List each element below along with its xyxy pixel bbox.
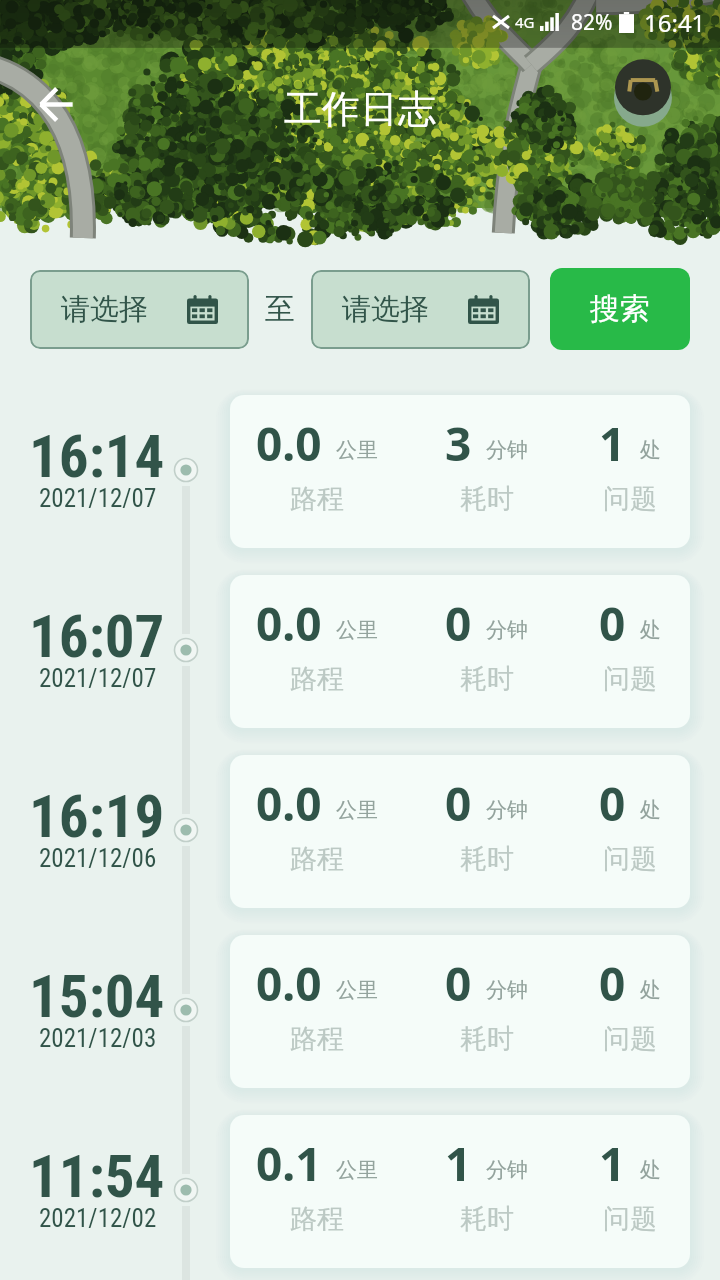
staticText: 路程: [290, 1022, 344, 1056]
staticText: 工作日志: [284, 85, 436, 133]
staticText: 处: [640, 437, 661, 463]
button[interactable]: 请选择: [30, 270, 249, 349]
staticText: 2021/12/03: [39, 1024, 157, 1053]
staticText: 问题: [603, 1202, 657, 1236]
staticText: 2021/12/07: [39, 484, 157, 513]
staticText: 分钟: [486, 977, 528, 1003]
staticText: 处: [640, 617, 661, 643]
staticText: 耗时: [460, 1022, 514, 1056]
staticText: 分钟: [486, 437, 528, 463]
staticText: 11:54: [29, 1142, 165, 1211]
staticText: 82%: [571, 8, 613, 37]
button[interactable]: 搜索: [550, 268, 690, 350]
staticText: 0.1: [256, 1132, 322, 1195]
staticText: 处: [640, 1157, 661, 1183]
button[interactable]: 15:04: [0, 935, 720, 1115]
staticText: 0: [445, 952, 472, 1015]
button[interactable]: 11:54: [0, 1115, 720, 1280]
staticText: 2021/12/06: [39, 844, 157, 873]
staticText: 0.0: [256, 412, 322, 475]
staticText: 耗时: [460, 1202, 514, 1236]
staticText: 0.0: [256, 772, 322, 835]
staticText: 15:04: [29, 962, 165, 1031]
staticText: 耗时: [460, 482, 514, 516]
staticText: 0: [599, 772, 626, 835]
staticText: 0.0: [256, 952, 322, 1015]
staticText: 请选择: [61, 291, 148, 328]
staticText: 2021/12/02: [39, 1204, 157, 1233]
staticText: 公里: [336, 617, 378, 643]
staticText: 1: [599, 1132, 626, 1195]
staticText: 请选择: [342, 291, 429, 328]
staticText: 至: [265, 290, 295, 328]
staticText: 0: [599, 952, 626, 1015]
staticText: 路程: [290, 482, 344, 516]
staticText: 问题: [603, 662, 657, 696]
staticText: 0: [599, 592, 626, 655]
staticText: 搜索: [590, 290, 650, 328]
staticText: 1: [445, 1132, 472, 1195]
staticText: 16:14: [29, 422, 165, 491]
staticText: 3: [445, 412, 472, 475]
button[interactable]: 请选择: [311, 270, 530, 349]
staticText: 0: [445, 772, 472, 835]
staticText: 16:07: [29, 602, 165, 671]
staticText: 0.0: [256, 592, 322, 655]
staticText: 路程: [290, 662, 344, 696]
staticText: 16:19: [29, 782, 165, 851]
staticText: 0: [445, 592, 472, 655]
staticText: 分钟: [486, 617, 528, 643]
staticText: 分钟: [486, 797, 528, 823]
staticText: 2021/12/07: [39, 664, 157, 693]
staticText: 耗时: [460, 662, 514, 696]
button[interactable]: Back: [28, 76, 84, 132]
staticText: 1: [599, 412, 626, 475]
staticText: 4G: [515, 12, 535, 32]
staticText: 问题: [603, 482, 657, 516]
staticText: 公里: [336, 1157, 378, 1183]
button[interactable]: 16:14: [0, 395, 720, 575]
staticText: 问题: [603, 842, 657, 876]
staticText: 公里: [336, 437, 378, 463]
staticText: 16:41: [644, 6, 706, 39]
button[interactable]: 16:19: [0, 755, 720, 935]
staticText: 分钟: [486, 1157, 528, 1183]
staticText: 问题: [603, 1022, 657, 1056]
staticText: 路程: [290, 842, 344, 876]
staticText: 耗时: [460, 842, 514, 876]
staticText: 路程: [290, 1202, 344, 1236]
staticText: 公里: [336, 797, 378, 823]
staticText: 公里: [336, 977, 378, 1003]
staticText: 处: [640, 797, 661, 823]
button[interactable]: 16:07: [0, 575, 720, 755]
staticText: 处: [640, 977, 661, 1003]
